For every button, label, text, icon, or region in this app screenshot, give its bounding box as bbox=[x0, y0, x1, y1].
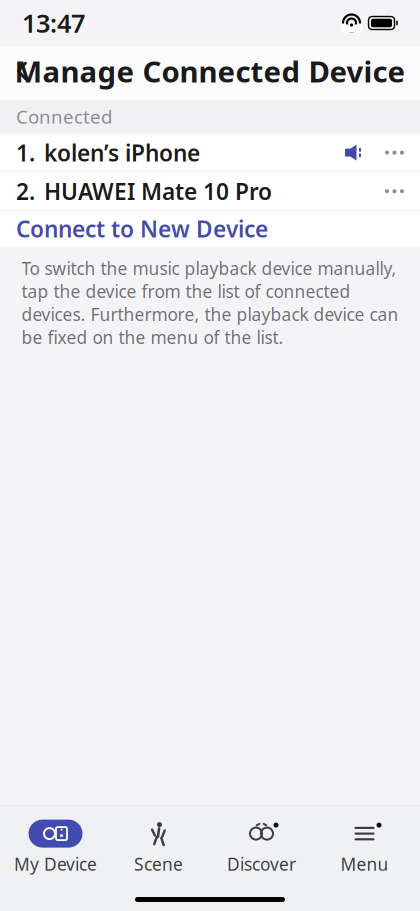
button[interactable]: Scene bbox=[107, 814, 210, 882]
button[interactable]: Back bbox=[0, 49, 44, 93]
staticText: Menu bbox=[340, 853, 388, 876]
staticText: My Device bbox=[14, 853, 97, 876]
staticText: Connect to New Device bbox=[16, 214, 268, 244]
staticText: Discover bbox=[227, 853, 296, 876]
staticText: kolen’s iPhone bbox=[44, 137, 200, 168]
staticText: To switch the music playback device manu… bbox=[21, 257, 398, 349]
button[interactable]: 2. bbox=[0, 172, 420, 210]
button[interactable]: Discover bbox=[210, 814, 313, 882]
staticText: 13:47 bbox=[22, 6, 85, 40]
staticText: Connected bbox=[16, 104, 112, 129]
button[interactable]: Menu bbox=[313, 814, 416, 882]
staticText: Scene bbox=[134, 853, 183, 876]
staticText: HUAWEI Mate 10 Pro bbox=[44, 176, 272, 206]
button[interactable]: 1. bbox=[0, 134, 420, 172]
staticText: Manage Connected Device bbox=[14, 51, 405, 90]
button[interactable]: My Device bbox=[4, 814, 107, 882]
staticText: 1. bbox=[16, 137, 35, 168]
button[interactable]: Connect to New Device bbox=[0, 211, 420, 247]
staticText: 2. bbox=[16, 176, 35, 206]
